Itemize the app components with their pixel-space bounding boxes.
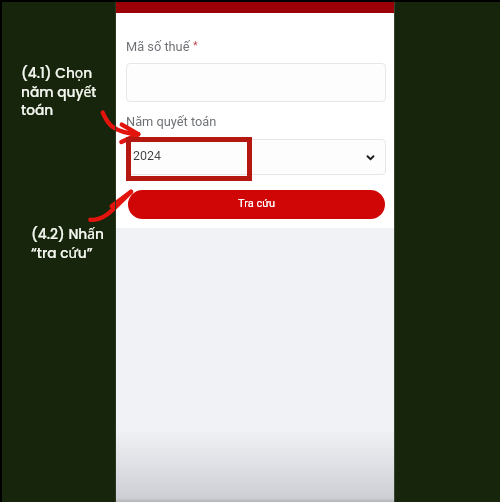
staticText: (4.1) Chọn năm quyết toán bbox=[21, 63, 97, 120]
staticText: * bbox=[193, 39, 198, 52]
staticText: Năm quyết toán bbox=[126, 114, 217, 129]
staticText: Mã số thuế bbox=[126, 39, 190, 54]
button[interactable] bbox=[126, 63, 386, 102]
staticText: 2024 bbox=[133, 148, 162, 163]
staticText: Tra cứu bbox=[238, 197, 276, 210]
other: Open year dropdown bbox=[365, 152, 376, 163]
button[interactable]: 2024 bbox=[126, 139, 386, 175]
staticText: (4.2) Nhấn “tra cứu” bbox=[31, 224, 104, 263]
button[interactable]: Tra cứu bbox=[128, 190, 385, 219]
